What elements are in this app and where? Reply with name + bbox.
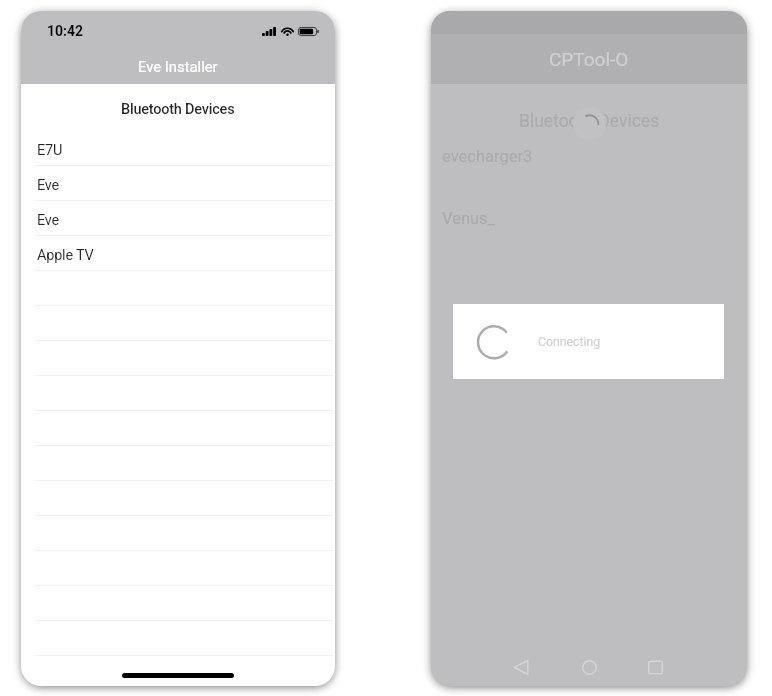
button[interactable]: Apple TV (21, 236, 335, 271)
staticText: Connecting (538, 335, 601, 349)
button[interactable]: Recent apps (635, 647, 675, 686)
staticText: Eve Installer (138, 58, 218, 75)
staticText: Apple TV (37, 247, 94, 264)
staticText: Eve (37, 212, 60, 229)
button[interactable]: evecharger3 (442, 140, 642, 172)
staticText: CPTool-O (549, 48, 629, 70)
staticText: Eve (37, 177, 60, 194)
staticText: Bluetooth Devices (121, 101, 235, 118)
staticText: Venus_ (442, 209, 496, 228)
staticText: 10:42 (47, 23, 84, 39)
staticText: E7U (37, 142, 63, 159)
staticText: evecharger3 (442, 147, 533, 166)
button[interactable]: E7U (21, 131, 335, 166)
button[interactable]: Home (569, 647, 609, 686)
button[interactable]: Back (501, 647, 541, 686)
staticText: Bluetooth Devices (519, 111, 660, 132)
button[interactable]: Eve (21, 166, 335, 201)
button[interactable]: Eve (21, 201, 335, 236)
